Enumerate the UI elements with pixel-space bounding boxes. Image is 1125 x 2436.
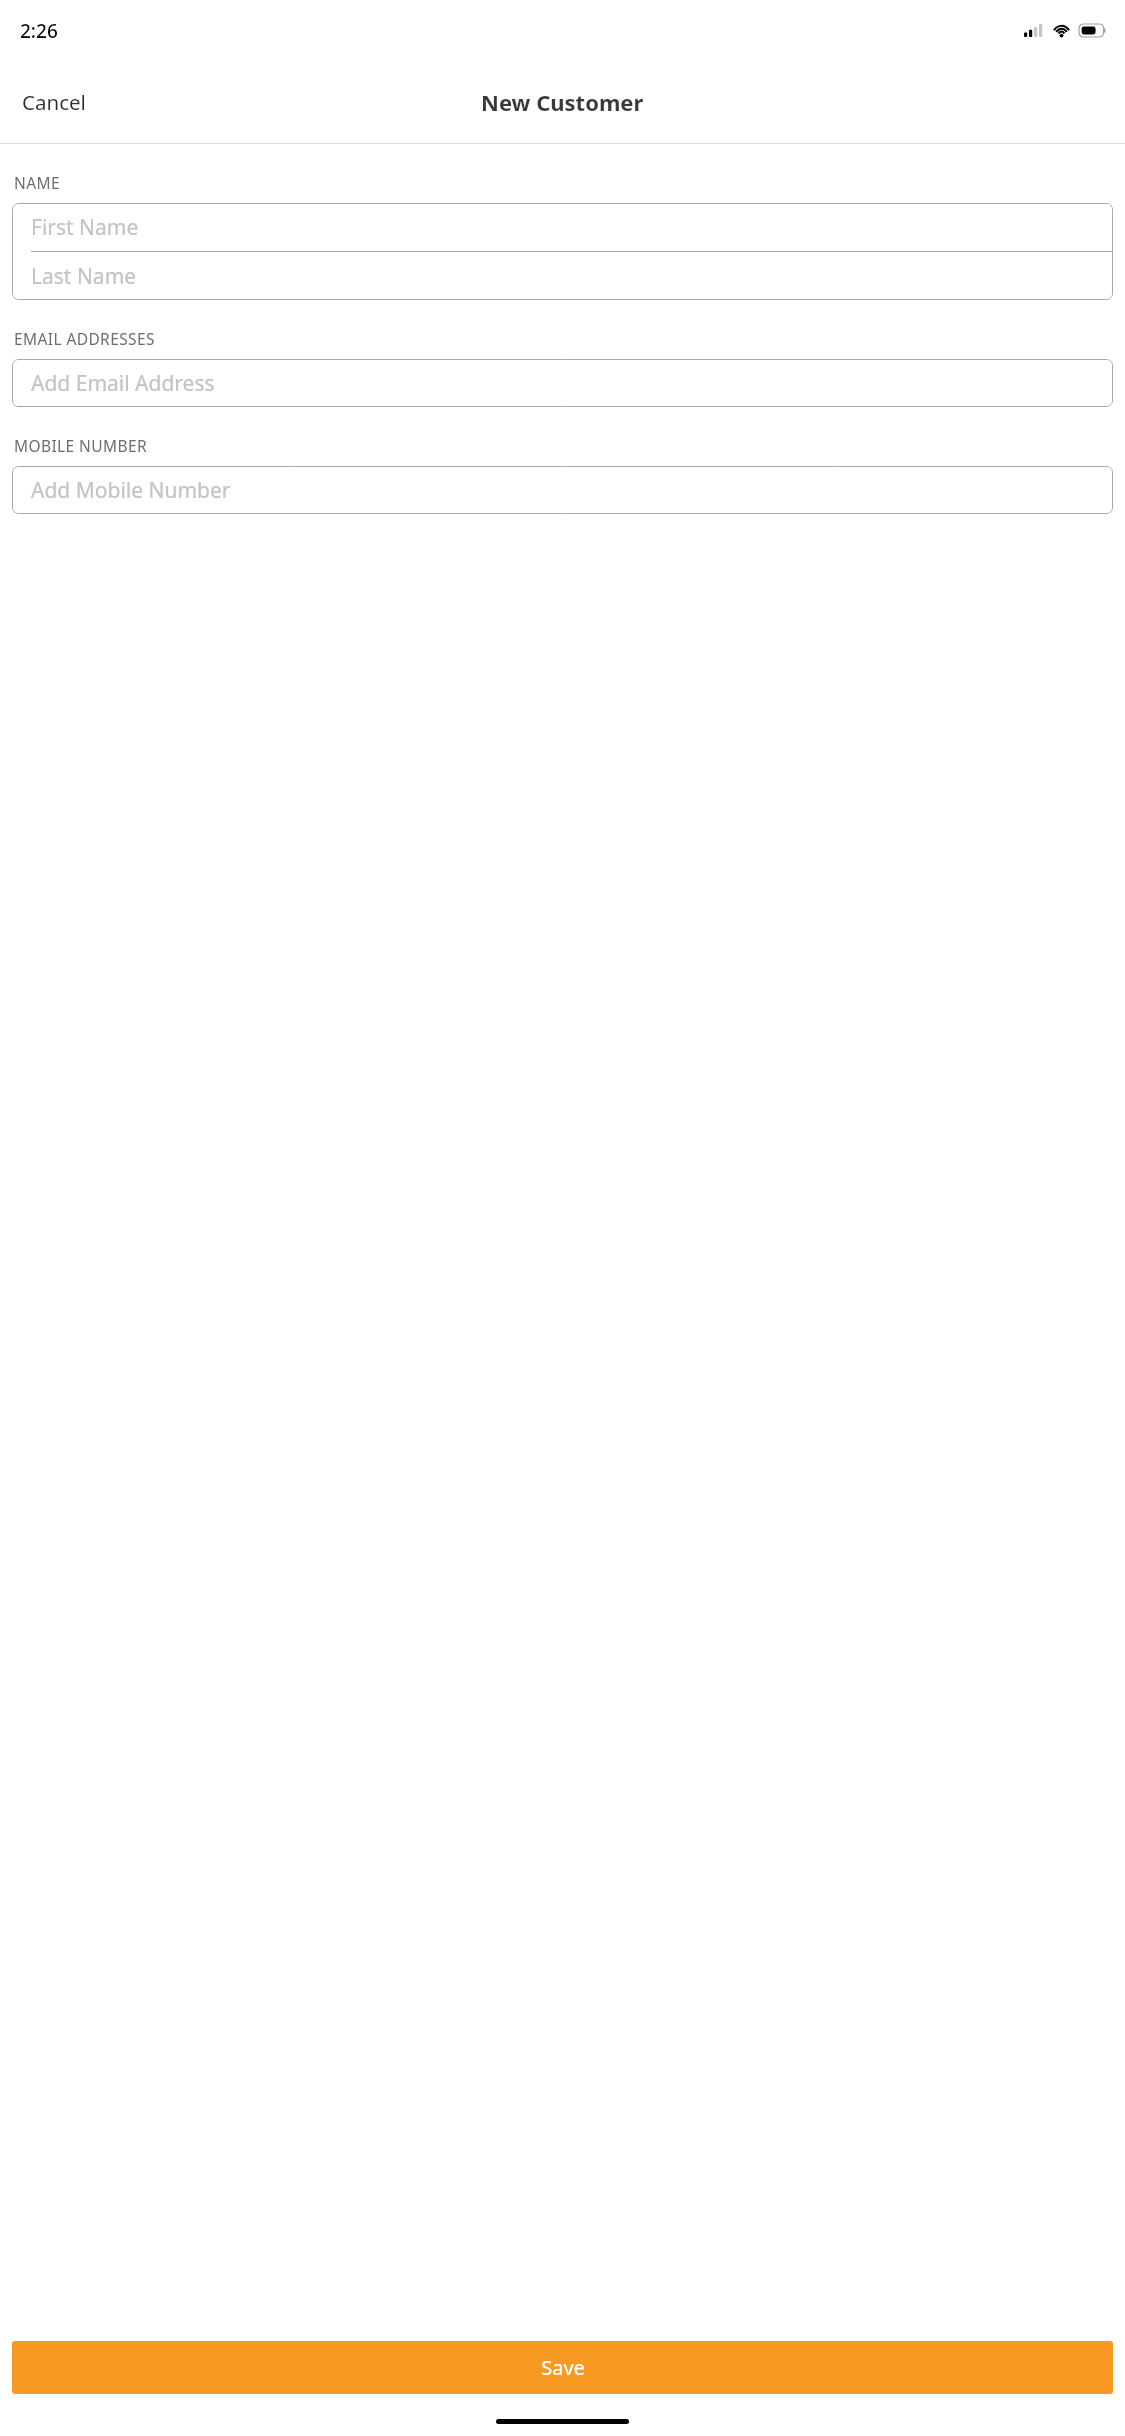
- staticText: Save: [541, 2354, 585, 2381]
- staticText: Cancel: [22, 88, 86, 116]
- button[interactable]: First Name: [12, 203, 1113, 251]
- button[interactable]: Add Email Address: [12, 359, 1113, 407]
- staticText: 2:26: [20, 18, 58, 44]
- staticText: MOBILE NUMBER: [14, 435, 147, 456]
- staticText: New Customer: [481, 87, 644, 117]
- staticText: Add Email Address: [31, 369, 215, 398]
- staticText: NAME: [14, 172, 60, 193]
- button[interactable]: Last Name: [12, 252, 1113, 300]
- staticText: EMAIL ADDRESSES: [14, 328, 155, 349]
- button[interactable]: Add Mobile Number: [12, 466, 1113, 514]
- button[interactable]: Cancel: [10, 80, 98, 124]
- staticText: Last Name: [31, 262, 137, 291]
- staticText: Add Mobile Number: [31, 476, 231, 505]
- button[interactable]: Save: [12, 2341, 1113, 2394]
- staticText: First Name: [31, 213, 139, 242]
